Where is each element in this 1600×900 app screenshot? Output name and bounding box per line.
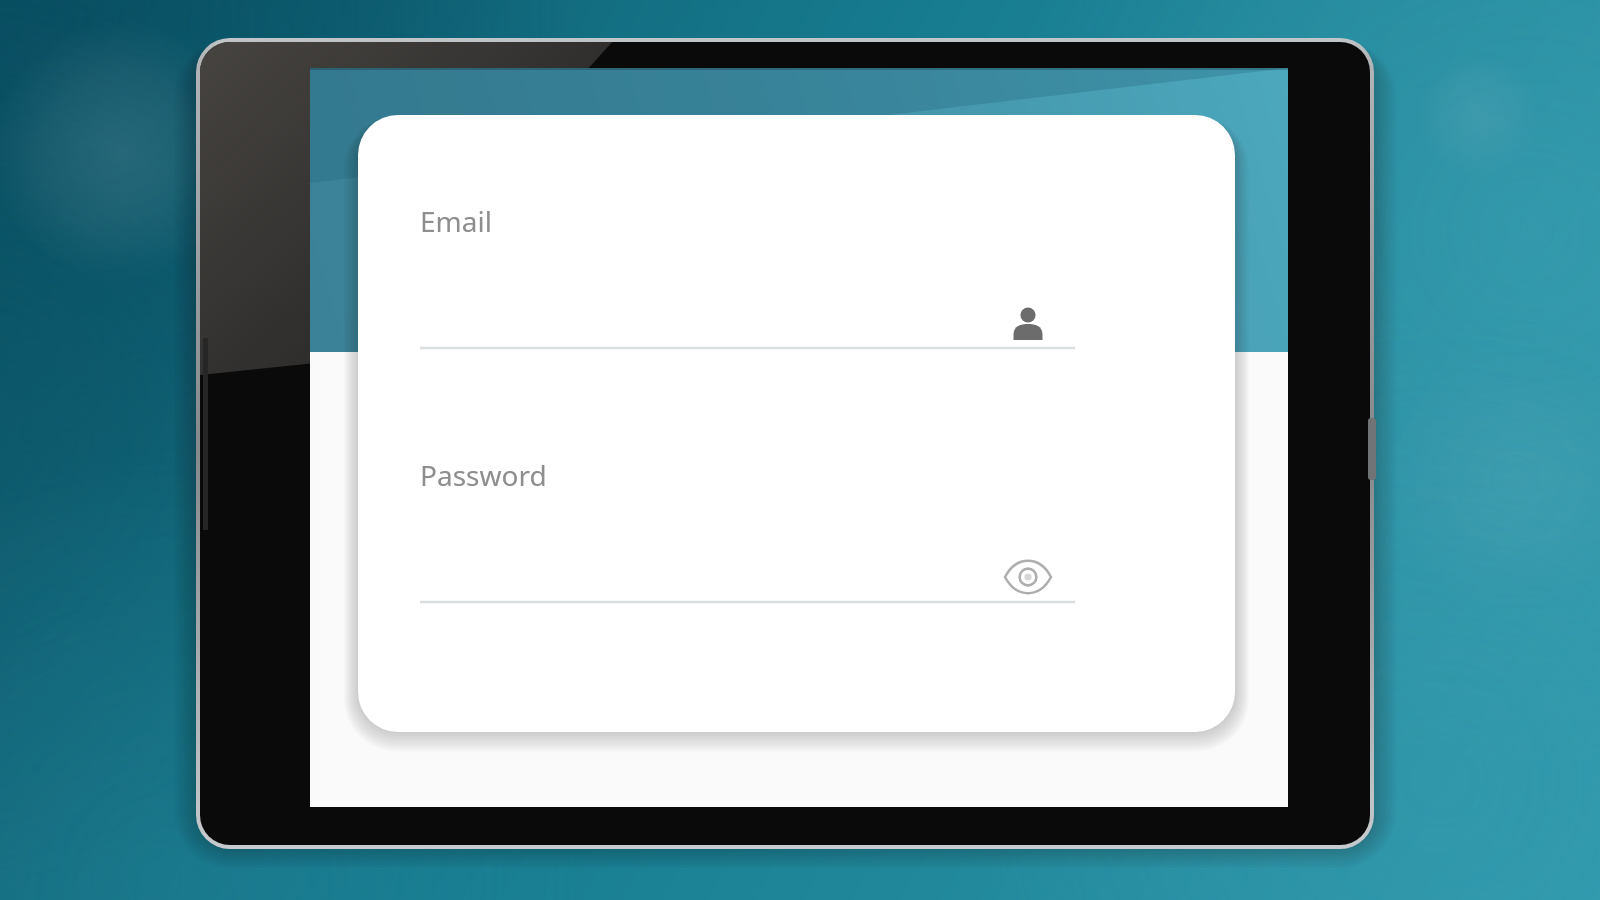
staticText: Password xyxy=(420,456,547,494)
button[interactable]: Account xyxy=(1003,296,1053,346)
button[interactable] xyxy=(420,446,1075,606)
button[interactable] xyxy=(420,192,1075,352)
button[interactable]: Show password xyxy=(1002,552,1054,602)
staticText: Email xyxy=(420,202,492,240)
